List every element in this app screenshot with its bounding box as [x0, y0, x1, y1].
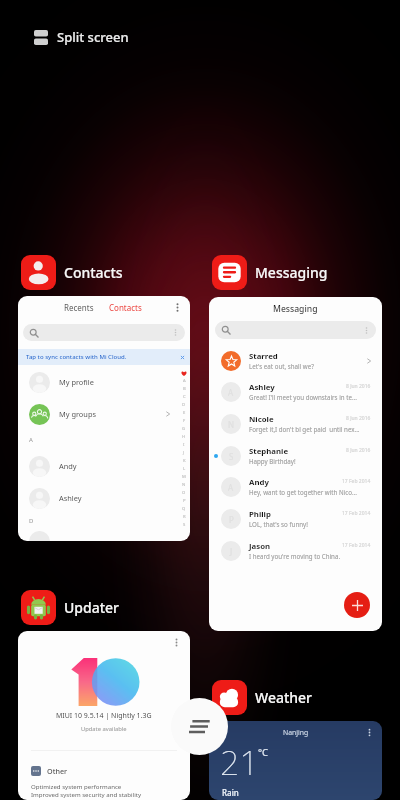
button[interactable]: Starred [209, 348, 382, 374]
staticText: B [183, 386, 186, 394]
button[interactable]: A [209, 379, 382, 405]
button[interactable]: Recents [18, 296, 190, 541]
staticText: Stephanie [249, 446, 289, 457]
staticText: D [182, 402, 186, 410]
staticText: O [182, 490, 186, 498]
staticText: A [228, 482, 234, 493]
staticText: E [183, 410, 186, 418]
staticText: P [229, 514, 234, 525]
staticText: Q [182, 506, 186, 514]
staticText: Ashley [59, 493, 82, 503]
staticText: Great! I'll meet you downstairs in te... [249, 393, 357, 401]
staticText: Tap to sync contacts with Mi Cloud. [26, 353, 127, 361]
staticText: S [229, 451, 234, 462]
staticText: J [230, 546, 233, 557]
staticText: H [182, 434, 186, 442]
button[interactable]: MIUI 10 9.5.14 | Nightly 1.3G [18, 631, 190, 800]
button[interactable]: Search contacts [23, 324, 185, 341]
button[interactable]: My profile [18, 369, 190, 395]
button[interactable]: Messaging [209, 297, 382, 631]
staticText: My profile [59, 377, 94, 387]
staticText: N [228, 419, 235, 430]
staticText: Hey, want to get together with Nico... [249, 488, 357, 496]
staticText: Nanjing [283, 728, 309, 737]
button[interactable]: Nanjing [209, 721, 382, 800]
staticText: I heard you're moving to China. [249, 552, 341, 560]
staticText: Updater [64, 598, 120, 617]
staticText: Messaging [255, 263, 328, 282]
staticText: Starred [249, 351, 278, 362]
staticText: R [183, 514, 186, 522]
staticText: M [182, 474, 186, 482]
staticText: °C [258, 746, 269, 759]
button[interactable]: Ashley [18, 485, 190, 511]
staticText: Update available [81, 725, 127, 733]
staticText: 8 Jun 2016 [346, 383, 371, 390]
staticText: D [29, 517, 34, 525]
staticText: G [182, 426, 186, 434]
staticText: 8 Jun 2016 [346, 447, 371, 454]
staticText: My groups [59, 409, 96, 419]
staticText: Jason [249, 541, 271, 552]
button[interactable]: Weather [210, 678, 315, 717]
staticText: Rain [222, 787, 239, 798]
staticText: Recents [64, 302, 94, 313]
button[interactable]: P [209, 506, 382, 532]
staticText: LOL, that's so funny! [249, 520, 308, 528]
button[interactable]: S [209, 443, 382, 469]
staticText: Contacts [64, 263, 123, 282]
staticText: K [183, 458, 186, 466]
button[interactable]: Updater [19, 588, 122, 627]
staticText: A [29, 436, 33, 444]
button[interactable]: N [209, 411, 382, 437]
staticText: A [228, 387, 234, 398]
staticText: Andy [249, 477, 269, 488]
staticText: Split screen [57, 28, 129, 46]
staticText: Optimized system performance [31, 782, 122, 790]
staticText: Other [47, 766, 68, 776]
button[interactable]: Split screen [31, 25, 132, 49]
button[interactable]: Contacts [19, 253, 125, 292]
staticText: Forget it,I don't bl get paid until nex.… [249, 425, 360, 433]
staticText: 8 Jun 2016 [346, 415, 371, 422]
staticText: P [183, 498, 186, 506]
staticText: Improved system security and stability [31, 790, 142, 798]
staticText: 17 Feb 2014 [342, 510, 371, 517]
staticText: A [183, 378, 186, 386]
staticText: 17 Feb 2014 [342, 542, 371, 549]
staticText: J [183, 450, 185, 458]
staticText: Weather [255, 688, 313, 707]
staticText: 17 Feb 2014 [342, 478, 371, 485]
staticText: I [183, 442, 185, 450]
button[interactable]: Andy [18, 453, 190, 479]
staticText: Andy [59, 461, 77, 471]
staticText: S [183, 522, 186, 530]
button[interactable]: Messaging [210, 253, 330, 292]
staticText: C [183, 394, 186, 402]
staticText: Happy Birthday! [249, 457, 296, 465]
button[interactable]: Recents menu [171, 698, 228, 755]
staticText: L [183, 466, 186, 474]
staticText: Nicole [249, 414, 274, 425]
staticText: Let's eat out, shall we? [249, 362, 314, 370]
staticText: Messaging [273, 303, 318, 315]
button[interactable]: A [209, 474, 382, 500]
button[interactable]: Tap to sync contacts with Mi Cloud. [18, 349, 190, 365]
button[interactable]: My groups [18, 401, 190, 427]
button[interactable]: Search messages [215, 321, 376, 339]
button[interactable]: J [209, 538, 382, 564]
staticText: Contacts [109, 302, 142, 313]
staticText: Philip [249, 509, 271, 520]
staticText: 21 [220, 739, 259, 785]
staticText: N [182, 482, 186, 490]
button[interactable]: New message [344, 592, 370, 618]
staticText: Ashley [249, 382, 275, 393]
staticText: F [183, 418, 186, 426]
staticText: MIUI 10 9.5.14 | Nightly 1.3G [56, 711, 152, 721]
